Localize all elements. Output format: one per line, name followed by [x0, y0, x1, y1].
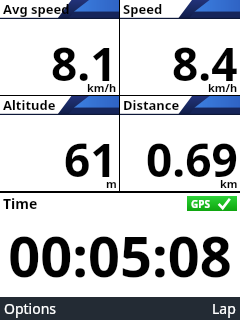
staticText: Speed: [123, 0, 163, 18]
button[interactable]: Altitude: [0, 96, 119, 191]
button[interactable]: Lap: [120, 297, 240, 320]
staticText: Time: [3, 194, 38, 213]
button[interactable]: GPS signal acquired: [187, 196, 237, 211]
staticText: GPS: [191, 197, 210, 211]
button[interactable]: 00:05:08: [0, 213, 240, 297]
button[interactable]: Avg speed: [0, 0, 119, 95]
staticText: Lap: [212, 299, 236, 318]
button[interactable]: Options: [0, 297, 120, 320]
staticText: 8.1: [51, 32, 117, 95]
staticText: 0.69: [146, 128, 238, 191]
staticText: m: [106, 176, 117, 191]
staticText: km/h: [87, 80, 117, 95]
button[interactable]: Speed: [120, 0, 240, 95]
staticText: Options: [4, 299, 57, 318]
staticText: Altitude: [3, 96, 56, 114]
staticText: km/h: [208, 80, 238, 95]
staticText: Distance: [123, 96, 180, 114]
staticText: 61: [64, 128, 117, 191]
button[interactable]: Distance: [120, 96, 240, 191]
staticText: 00:05:08: [0, 217, 240, 293]
staticText: Avg speed: [3, 0, 70, 18]
staticText: km: [220, 176, 238, 191]
button[interactable]: Time: [0, 193, 240, 213]
staticText: 8.4: [172, 32, 238, 95]
